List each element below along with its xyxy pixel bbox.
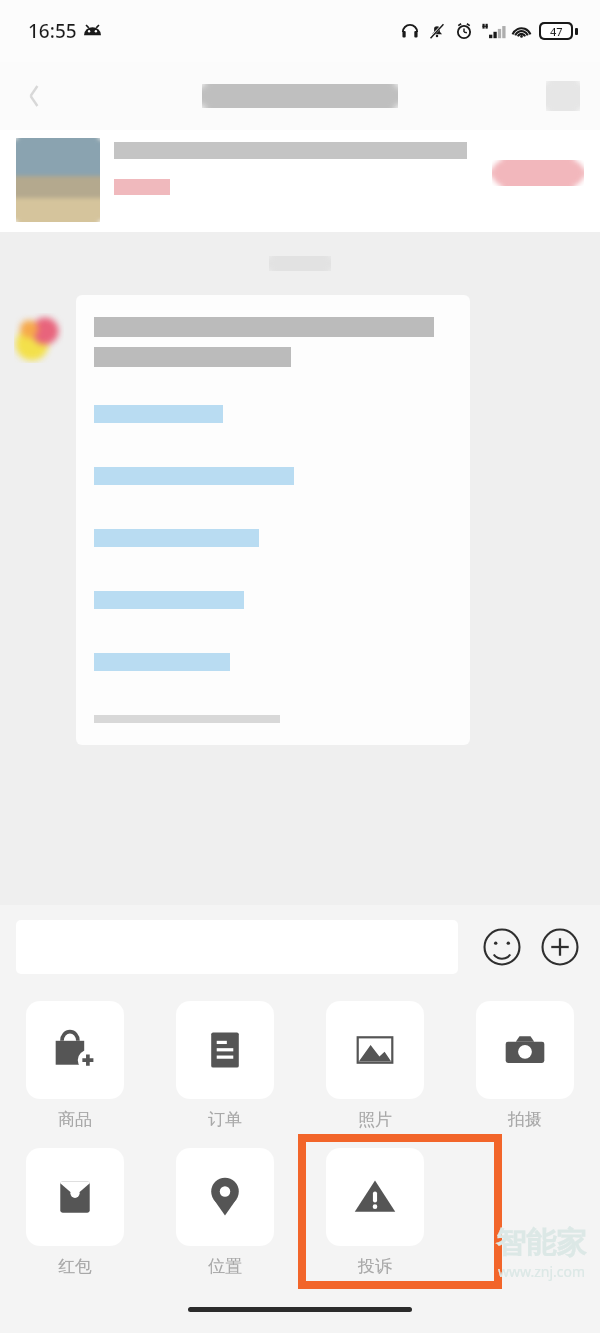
staticText: 拍摄 xyxy=(508,1109,542,1130)
button[interactable] xyxy=(76,295,470,745)
staticText: 红包 xyxy=(58,1256,92,1277)
button[interactable]: 照片 xyxy=(300,1001,450,1130)
staticText: 47 xyxy=(550,24,563,38)
staticText: 位置 xyxy=(208,1256,242,1277)
staticText: 照片 xyxy=(358,1109,392,1130)
button[interactable] xyxy=(16,138,584,224)
button[interactable]: 投诉 xyxy=(300,1148,450,1277)
staticText: 订单 xyxy=(208,1109,242,1130)
staticText: www.znj.com xyxy=(498,1262,586,1281)
button[interactable]: 红包 xyxy=(0,1148,150,1277)
staticText: 投诉 xyxy=(358,1256,392,1277)
button[interactable]: More options xyxy=(538,925,582,969)
staticText: 16:55 xyxy=(28,18,77,44)
button[interactable]: 拍摄 xyxy=(450,1001,600,1130)
staticText: 商品 xyxy=(58,1109,92,1130)
button[interactable]: 订单 xyxy=(150,1001,300,1130)
staticText: 智能家 xyxy=(496,1224,586,1262)
button[interactable] xyxy=(492,160,584,186)
button[interactable]: Emoji xyxy=(480,925,524,969)
button[interactable]: 商品 xyxy=(0,1001,150,1130)
button[interactable]: Back xyxy=(18,79,52,113)
button[interactable]: 位置 xyxy=(150,1148,300,1277)
